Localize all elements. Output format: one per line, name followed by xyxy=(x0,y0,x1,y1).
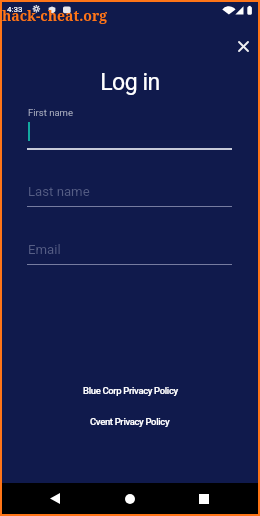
staticText: First name xyxy=(28,107,73,118)
button[interactable]: Close xyxy=(230,33,257,60)
staticText: 4:33 xyxy=(7,5,23,14)
button[interactable]: Home xyxy=(116,483,144,514)
button[interactable]: Recents xyxy=(190,483,218,514)
button[interactable]: Cvent Privacy Policy xyxy=(82,413,178,430)
button[interactable]: Last name xyxy=(27,183,232,210)
button[interactable]: Email xyxy=(27,241,232,268)
staticText: Email xyxy=(28,242,61,257)
button[interactable]: Blue Corp Privacy Policy xyxy=(75,382,186,399)
staticText: hack-cheat.org xyxy=(2,6,108,25)
staticText: Last name xyxy=(28,184,90,199)
staticText: Cvent Privacy Policy xyxy=(90,416,170,427)
staticText: Blue Corp Privacy Policy xyxy=(83,385,178,396)
button[interactable]: Back xyxy=(41,483,69,514)
staticText: Log in xyxy=(100,69,160,96)
button[interactable]: First name xyxy=(27,106,232,153)
